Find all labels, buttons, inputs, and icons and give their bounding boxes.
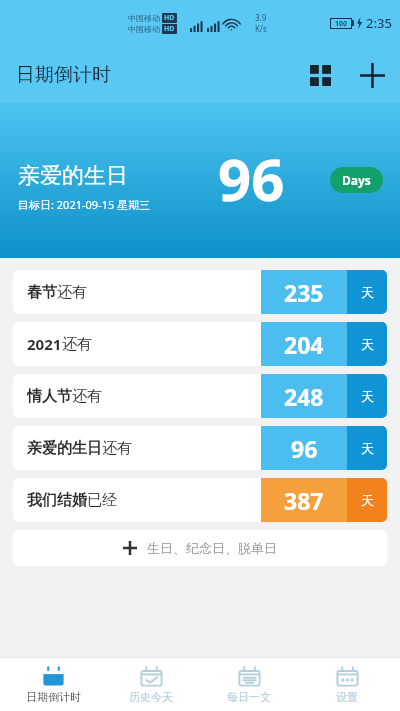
staticText: 天 bbox=[361, 284, 374, 300]
staticText: 204 bbox=[284, 329, 324, 360]
button[interactable]: 12 bbox=[8, 657, 98, 711]
button[interactable]: 春节 bbox=[13, 270, 387, 314]
staticText: 我们结婚 bbox=[27, 491, 87, 510]
staticText: 96 bbox=[291, 433, 318, 464]
button[interactable]: Grid view bbox=[298, 53, 342, 97]
staticText: 日期倒计时 bbox=[26, 690, 81, 704]
staticText: 96 bbox=[218, 139, 285, 218]
staticText: 日期倒计时 bbox=[16, 63, 111, 87]
staticText: 中国移动 bbox=[128, 13, 160, 23]
staticText: 春节 bbox=[27, 283, 57, 302]
button[interactable]: 我们结婚 bbox=[13, 478, 387, 522]
button[interactable]: 情人节 bbox=[13, 374, 387, 418]
staticText: K/s bbox=[255, 23, 267, 34]
staticText: 设置 bbox=[336, 690, 358, 704]
staticText: 100 bbox=[335, 19, 348, 28]
staticText: 目标日: 2021-09-15 星期三 bbox=[18, 197, 151, 212]
staticText: 已经 bbox=[87, 491, 117, 510]
button[interactable]: 历史今天 bbox=[106, 657, 196, 711]
staticText: 每日一文 bbox=[227, 690, 271, 704]
staticText: 历史今天 bbox=[129, 690, 173, 704]
staticText: 还有 bbox=[102, 439, 132, 458]
staticText: 还有 bbox=[72, 387, 102, 406]
button[interactable]: 亲爱的生日 bbox=[13, 426, 387, 470]
staticText: 情人节 bbox=[27, 387, 72, 406]
button[interactable]: 每日一文 bbox=[204, 657, 294, 711]
staticText: HD bbox=[164, 13, 175, 23]
staticText: 3.9 bbox=[255, 12, 267, 23]
staticText: 还有 bbox=[57, 283, 87, 302]
staticText: 生日、纪念日、脱单日 bbox=[147, 540, 277, 556]
staticText: 天 bbox=[361, 440, 374, 456]
staticText: HD bbox=[164, 24, 175, 34]
staticText: 2:35 bbox=[366, 14, 392, 32]
button[interactable]: 设置 bbox=[302, 657, 392, 711]
staticText: 天 bbox=[361, 492, 374, 508]
staticText: 235 bbox=[284, 277, 324, 308]
staticText: 还有 bbox=[62, 335, 92, 354]
button[interactable]: 亲爱的生日 bbox=[0, 103, 400, 258]
staticText: 天 bbox=[361, 336, 374, 352]
staticText: 2021 bbox=[27, 334, 62, 354]
staticText: Days bbox=[342, 172, 371, 188]
staticText: 387 bbox=[284, 485, 324, 516]
staticText: 天 bbox=[361, 388, 374, 404]
staticText: 亲爱的生日 bbox=[27, 439, 102, 458]
button[interactable]: 生日、纪念日、脱单日 bbox=[13, 530, 387, 566]
staticText: 亲爱的生日 bbox=[18, 162, 128, 190]
button[interactable]: 2021 bbox=[13, 322, 387, 366]
staticText: 248 bbox=[284, 381, 324, 412]
button[interactable]: Add bbox=[350, 53, 394, 97]
staticText: 中国移动 bbox=[128, 24, 160, 34]
